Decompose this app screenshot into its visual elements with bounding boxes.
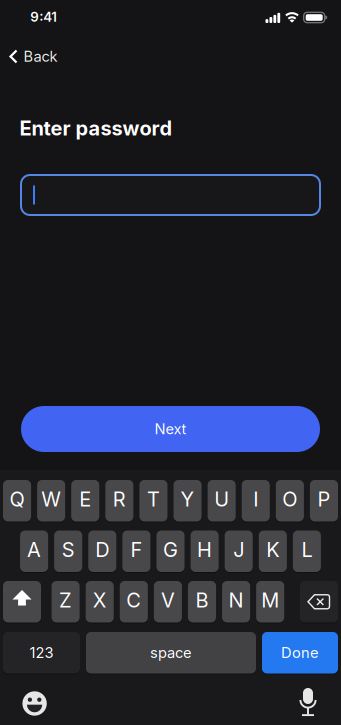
staticText: Enter password xyxy=(19,116,172,140)
staticText: Next xyxy=(154,420,186,438)
staticText: I xyxy=(253,487,258,511)
staticText: space xyxy=(150,644,192,661)
button[interactable]: T xyxy=(139,480,167,521)
staticText: H xyxy=(197,538,212,562)
staticText: P xyxy=(317,487,330,511)
staticText: R xyxy=(113,487,126,511)
button[interactable]: K xyxy=(259,530,287,572)
button[interactable]: space xyxy=(86,632,256,673)
button[interactable]: P xyxy=(310,480,338,521)
staticText: Z xyxy=(59,588,72,612)
button[interactable]: Next xyxy=(21,406,320,452)
staticText: T xyxy=(147,487,160,511)
button[interactable]: U xyxy=(208,480,236,521)
button[interactable]: F xyxy=(122,530,150,572)
staticText: Q xyxy=(10,487,25,511)
staticText: Done xyxy=(281,644,319,661)
button[interactable]: E xyxy=(71,480,99,521)
button[interactable]: Delete xyxy=(300,581,338,622)
staticText: N xyxy=(229,588,244,612)
staticText: V xyxy=(161,588,175,612)
button[interactable]: V xyxy=(154,581,182,622)
button[interactable]: N xyxy=(222,581,250,622)
button[interactable]: L xyxy=(293,530,321,572)
staticText: O xyxy=(282,487,297,511)
button[interactable]: J xyxy=(225,530,253,572)
button[interactable]: 123 xyxy=(3,632,80,673)
button[interactable]: A xyxy=(20,530,48,572)
staticText: 123 xyxy=(29,644,53,661)
staticText: D xyxy=(95,538,109,562)
staticText: G xyxy=(163,538,178,562)
button[interactable]: Emoji xyxy=(22,690,48,716)
staticText: K xyxy=(266,538,279,562)
staticText: A xyxy=(27,538,41,562)
staticText: M xyxy=(261,588,279,612)
staticText: W xyxy=(41,487,61,511)
button[interactable]: Y xyxy=(173,480,202,521)
staticText: U xyxy=(214,487,229,511)
button[interactable]: S xyxy=(54,530,82,572)
button[interactable]: Q xyxy=(3,480,31,521)
button[interactable]: B xyxy=(188,581,216,622)
staticText: E xyxy=(79,487,91,511)
staticText: Back xyxy=(23,48,57,65)
staticText: B xyxy=(195,588,208,612)
button[interactable]: X xyxy=(86,581,114,622)
button[interactable]: M xyxy=(256,581,284,622)
staticText: C xyxy=(126,588,141,612)
button[interactable]: R xyxy=(105,480,133,521)
button[interactable]: Dictation xyxy=(298,687,318,717)
button[interactable]: O xyxy=(276,480,304,521)
staticText: J xyxy=(233,538,244,562)
staticText: X xyxy=(93,588,107,612)
staticText: F xyxy=(130,538,142,562)
button[interactable]: Done xyxy=(262,632,338,673)
button[interactable]: I xyxy=(242,480,270,521)
staticText: Y xyxy=(181,487,195,511)
staticText: S xyxy=(62,538,75,562)
button[interactable]: Shift xyxy=(3,581,41,622)
button[interactable]: Password xyxy=(21,175,320,215)
button[interactable]: Z xyxy=(51,581,80,622)
button[interactable]: D xyxy=(88,530,116,572)
button[interactable]: Back xyxy=(8,48,57,65)
button[interactable]: H xyxy=(191,530,219,572)
staticText: L xyxy=(301,538,312,562)
button[interactable]: W xyxy=(37,480,65,521)
staticText: 9:41 xyxy=(30,9,57,25)
button[interactable]: G xyxy=(156,530,185,572)
button[interactable]: C xyxy=(120,581,148,622)
